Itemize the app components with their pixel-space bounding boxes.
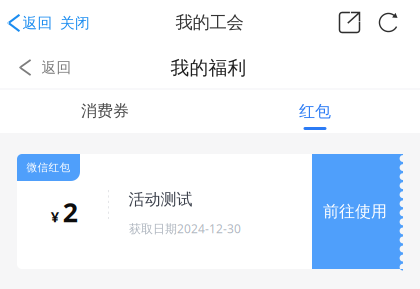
staticText: 我的福利: [170, 56, 246, 79]
button[interactable]: 返回: [19, 52, 74, 82]
staticText: 红包: [299, 102, 331, 121]
staticText: 消费券: [81, 101, 129, 121]
button[interactable]: 关闭: [55, 8, 95, 38]
staticText: ¥: [51, 207, 59, 226]
staticText: 2: [63, 194, 78, 230]
button[interactable]: Open in browser: [333, 6, 366, 39]
staticText: 返回: [22, 14, 52, 32]
button[interactable]: Refresh: [373, 7, 404, 38]
staticText: 关闭: [60, 14, 90, 32]
staticText: 微信红包: [26, 161, 70, 174]
staticText: 获取日期2024-12-30: [129, 220, 241, 236]
staticText: 返回: [41, 58, 71, 76]
staticText: 活动测试: [128, 190, 192, 209]
button[interactable]: 返回: [7, 8, 57, 38]
button[interactable]: 前往使用: [312, 154, 403, 269]
button[interactable]: 红包: [250, 90, 380, 138]
staticText: 我的工会: [175, 12, 243, 33]
staticText: 前往使用: [323, 202, 387, 221]
button[interactable]: 消费券: [40, 90, 170, 132]
